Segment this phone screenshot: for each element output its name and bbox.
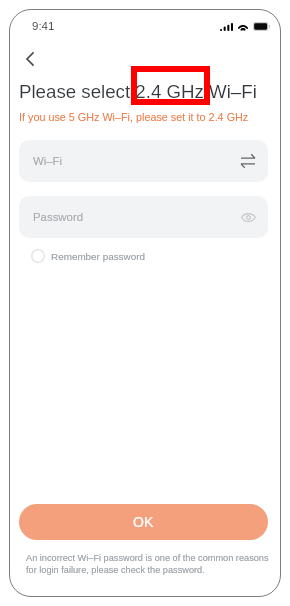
staticText: If you use 5 GHz Wi–Fi, please set it to… xyxy=(19,111,249,123)
staticText: Wi–Fi xyxy=(33,155,63,168)
button[interactable]: Wi–Fi xyxy=(19,140,268,182)
staticText: An incorrect Wi–Fi password is one of th… xyxy=(26,553,269,563)
staticText: Password xyxy=(33,211,84,224)
button[interactable]: Show password xyxy=(236,205,260,229)
button[interactable]: OK xyxy=(19,504,268,540)
staticText: for login failure, please check the pass… xyxy=(26,565,205,575)
staticText: OK xyxy=(133,514,154,530)
button[interactable]: Password xyxy=(19,196,268,238)
button[interactable]: Remember password xyxy=(31,245,145,267)
staticText: Please select 2.4 GHz Wi–Fi xyxy=(19,81,257,102)
staticText: Remember password xyxy=(51,251,145,262)
button[interactable]: Back xyxy=(12,44,48,74)
button[interactable]: Switch network xyxy=(236,149,260,173)
staticText: 9:41 xyxy=(32,20,55,33)
